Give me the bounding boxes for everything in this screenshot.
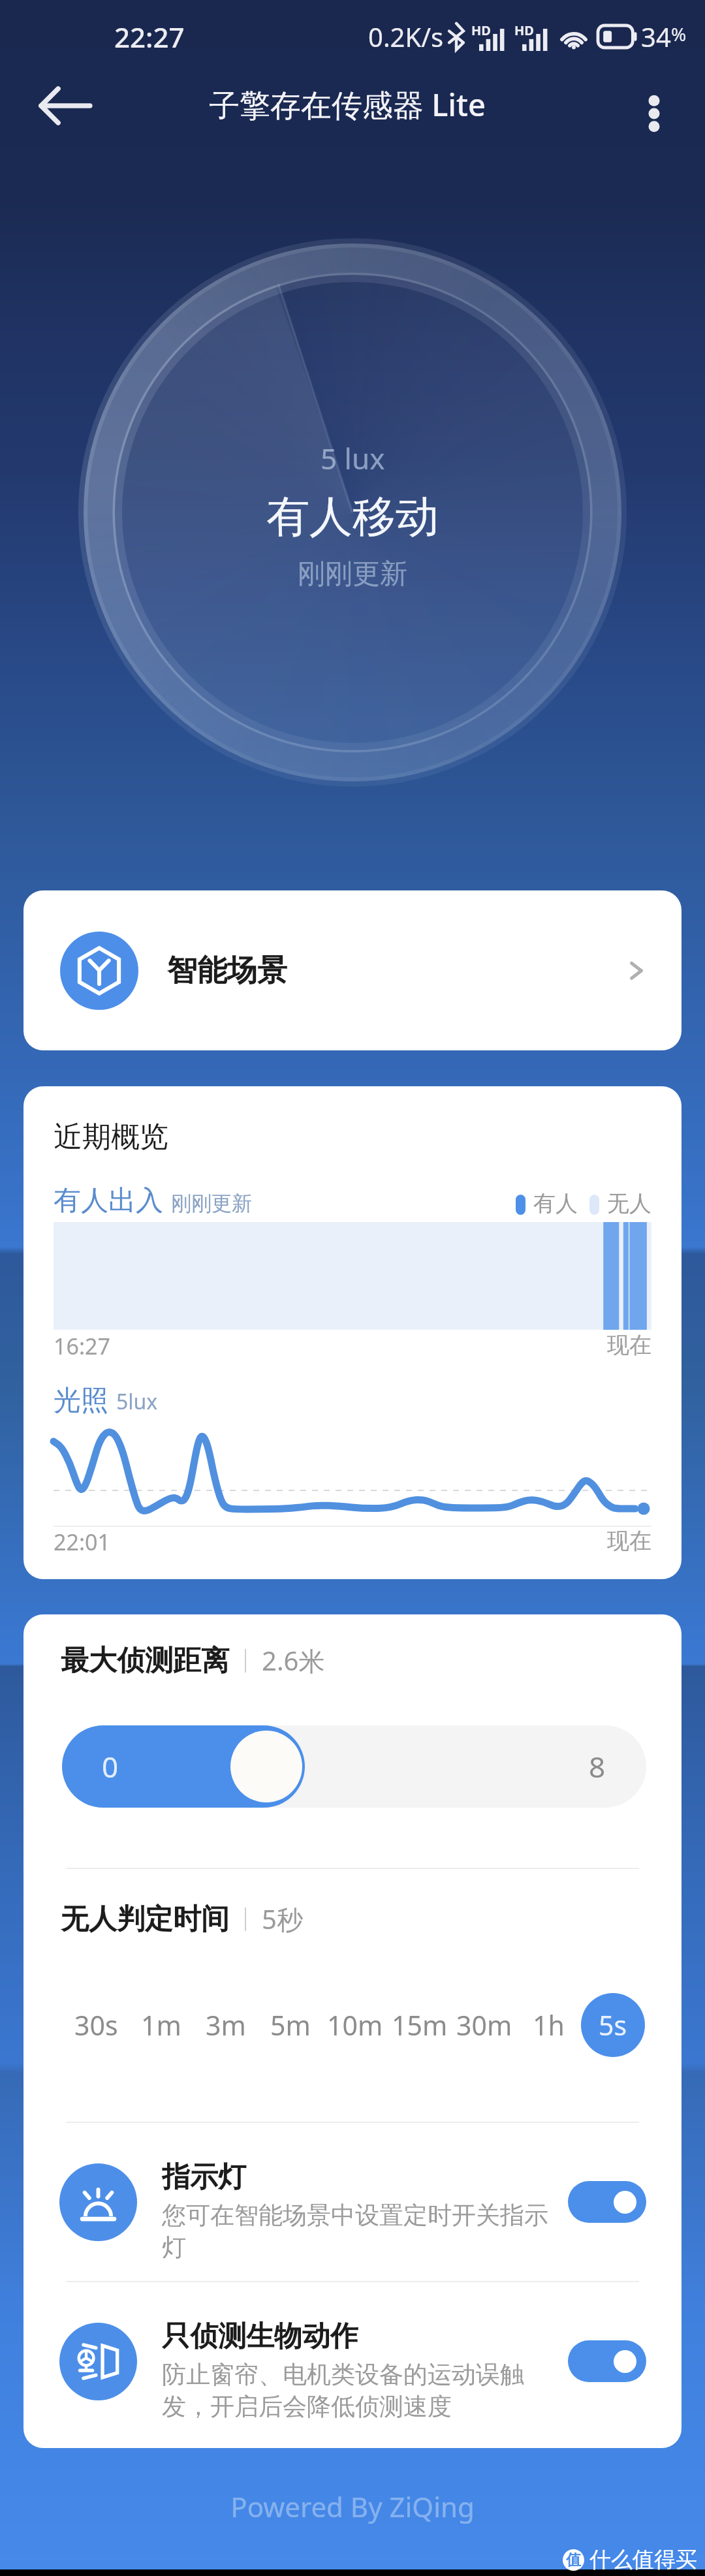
button[interactable]: 30s [64,1989,129,2061]
staticText: 22:01 [54,1527,110,1557]
staticText: 值 [566,2551,581,2569]
staticText: 10m [327,2007,383,2043]
button[interactable]: 指示灯 [568,2181,646,2223]
staticText: 3m [206,2007,246,2043]
button[interactable]: 1m [129,1989,193,2061]
staticText: 刚刚更新 [298,557,407,591]
staticText: 无人 [607,1189,651,1217]
staticText: 30m [456,2007,512,2043]
staticText: 有人出入 [54,1184,163,1218]
button[interactable]: More options [637,97,671,131]
staticText: 什么值得买 [589,2546,697,2573]
staticText: 有人 [533,1189,578,1217]
staticText: HD [471,22,491,39]
button[interactable]: Back [38,78,93,133]
staticText: 0 [102,1747,119,1786]
staticText: 5m [270,2007,311,2043]
staticText: 只侦测生物动作 [162,2319,358,2354]
staticText: 光照 [54,1383,108,1418]
button[interactable]: 指示灯 [59,2123,646,2281]
button[interactable]: 只侦测生物动作 [568,2340,646,2382]
staticText: HD [514,22,534,39]
staticText: 5秒 [262,1901,303,1937]
staticText: 5lux [116,1387,158,1416]
staticText: 刚刚更新 [171,1191,252,1216]
button[interactable]: 0 [62,1725,305,1808]
staticText: 无人判定时间 [61,1902,229,1937]
staticText: 5 lux [321,439,385,478]
staticText: 5s [599,2007,627,2043]
staticText: 子擎存在传感器 Lite [209,84,486,125]
staticText: % [671,22,687,46]
staticText: 22:27 [114,18,185,55]
button[interactable]: 5s [581,1993,645,2057]
staticText: 34 [641,19,671,54]
button[interactable]: 只侦测生物动作 [59,2282,646,2440]
staticText: 1m [141,2007,181,2043]
staticText: 0.2K/s [368,19,444,54]
staticText: 有人移动 [266,490,439,544]
staticText: 30s [74,2007,118,2043]
staticText: 15m [392,2007,448,2043]
staticText: 1h [533,2007,565,2043]
staticText: 近期概览 [54,1119,168,1155]
button[interactable]: 3m [193,1989,258,2061]
button[interactable]: 30m [452,1989,516,2061]
staticText: 指示灯 [162,2160,246,2195]
button[interactable]: 10m [322,1989,387,2061]
button[interactable]: 5m [258,1989,322,2061]
staticText: 16:27 [54,1331,110,1361]
staticText: 您可在智能场景中设置定时开关指示灯 [162,2200,554,2263]
staticText: 现在 [607,1331,651,1359]
staticText: 最大侦测距离 [61,1643,229,1678]
staticText: 智能场景 [167,952,287,990]
button[interactable]: 智能场景 [23,890,681,1050]
staticText: 8 [589,1747,606,1786]
staticText: 防止窗帘、电机类设备的运动误触发，开启后会降低侦测速度 [162,2359,554,2422]
staticText: 现在 [607,1527,651,1555]
button[interactable]: 15m [387,1989,452,2061]
staticText: 2.6米 [262,1642,325,1678]
staticText: Powered By ZiQing [0,2488,705,2525]
button[interactable]: 1h [516,1989,581,2061]
